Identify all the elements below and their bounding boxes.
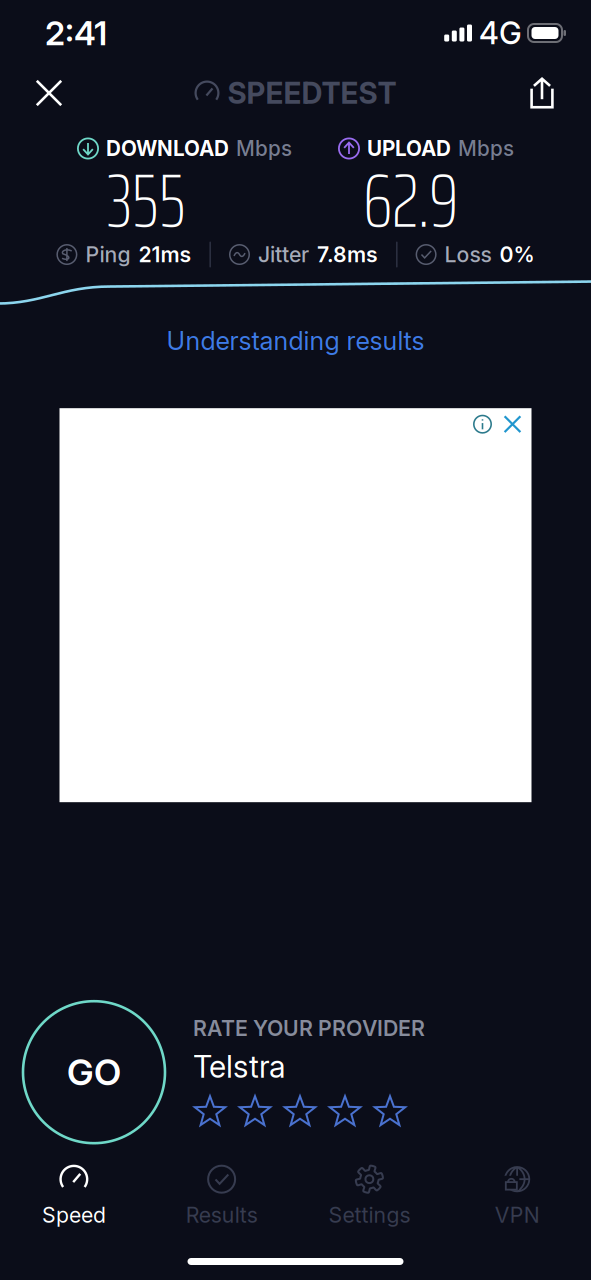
button[interactable]: Rate 2 stars [238, 1095, 272, 1129]
staticText: Understanding results [166, 325, 424, 356]
button[interactable]: Rate 5 stars [373, 1095, 407, 1129]
staticText: 7.8ms [317, 242, 378, 267]
staticText: Loss [445, 242, 492, 267]
staticText: Ping [85, 242, 130, 267]
staticText: Results [186, 1202, 258, 1228]
staticText: VPN [495, 1202, 540, 1228]
staticText: 2:41 [45, 13, 107, 53]
button[interactable]: Results [148, 1163, 296, 1228]
button[interactable]: Rate 1 star [193, 1095, 227, 1129]
staticText: UPLOAD [367, 136, 451, 161]
button[interactable]: Settings [295, 1163, 443, 1228]
button[interactable]: Speed [0, 1163, 148, 1228]
button[interactable]: VPN [443, 1163, 591, 1228]
staticText: GO [67, 1050, 121, 1094]
staticText: Telstra [193, 1048, 286, 1085]
staticText: Jitter [258, 242, 309, 267]
staticText: 62.9 [363, 142, 458, 259]
staticText: 21ms [138, 242, 191, 267]
button[interactable]: Understanding results [152, 314, 438, 367]
staticText: Mbps [458, 136, 514, 161]
button[interactable]: Share [515, 68, 569, 118]
staticText: 355 [107, 142, 186, 259]
button[interactable]: Rate 4 stars [328, 1095, 362, 1129]
button[interactable]: Close [22, 68, 76, 118]
staticText: RATE YOUR PROVIDER [193, 1015, 425, 1041]
staticText: Settings [328, 1202, 410, 1228]
button[interactable]: GO [23, 1001, 165, 1143]
button[interactable]: Ad information [471, 413, 493, 435]
button[interactable]: Close ad [501, 413, 523, 435]
staticText: DOWNLOAD [106, 136, 229, 161]
staticText: 0% [500, 242, 535, 267]
staticText: Mbps [236, 136, 292, 161]
staticText: SPEEDTEST [227, 75, 396, 111]
staticText: 4G [479, 14, 522, 51]
staticText: Speed [42, 1202, 106, 1228]
button[interactable]: Rate 3 stars [283, 1095, 317, 1129]
